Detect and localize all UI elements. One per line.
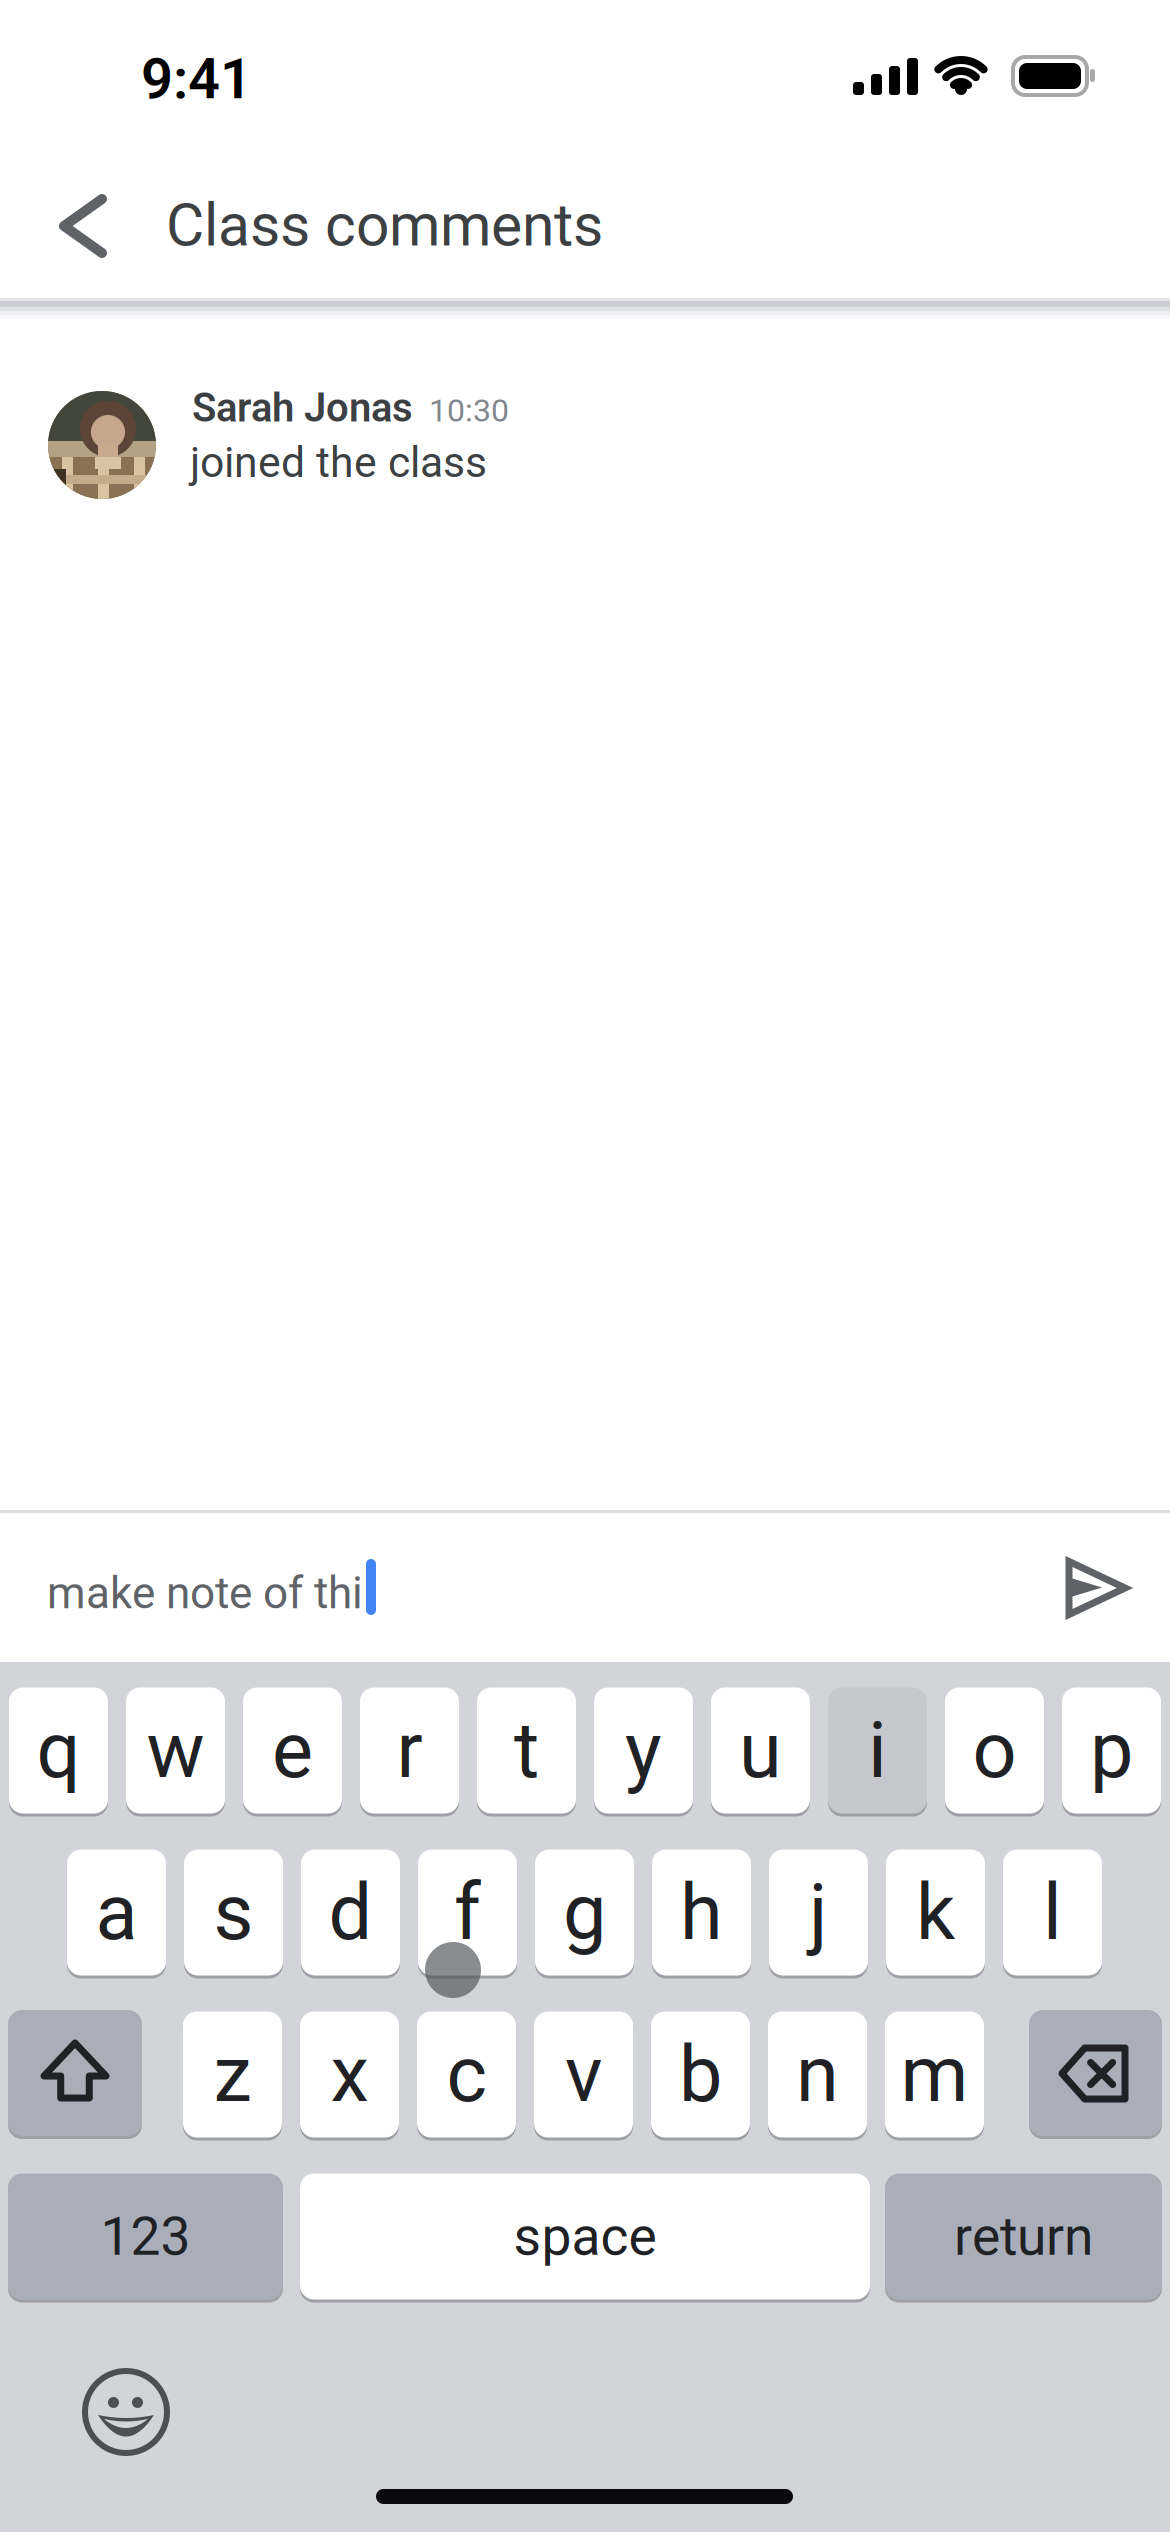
staticText: i xyxy=(868,1706,887,1795)
staticText: p xyxy=(1090,1706,1133,1795)
button[interactable]: k xyxy=(886,1848,985,1977)
staticText: x xyxy=(330,2030,368,2119)
staticText: 123 xyxy=(100,2206,190,2267)
button[interactable]: return xyxy=(885,2172,1162,2301)
staticText: t xyxy=(514,1706,539,1795)
staticText: joined the class xyxy=(190,438,487,487)
staticText: s xyxy=(213,1868,253,1957)
button[interactable]: g xyxy=(535,1848,634,1977)
button[interactable]: Send xyxy=(1058,1551,1136,1625)
staticText: b xyxy=(679,2030,722,2119)
button[interactable]: c xyxy=(417,2010,516,2139)
button[interactable]: x xyxy=(300,2010,399,2139)
staticText: Class comments xyxy=(166,192,603,259)
staticText: l xyxy=(1043,1868,1062,1957)
button[interactable]: m xyxy=(885,2010,984,2139)
button[interactable]: o xyxy=(945,1686,1044,1815)
staticText: z xyxy=(213,2030,251,2119)
staticText: n xyxy=(796,2030,839,2119)
staticText: e xyxy=(272,1706,313,1795)
staticText: f xyxy=(454,1868,481,1957)
button[interactable]: l xyxy=(1003,1848,1102,1977)
button[interactable]: p xyxy=(1062,1686,1161,1815)
staticText: q xyxy=(36,1706,80,1795)
button[interactable]: q xyxy=(9,1686,108,1815)
button[interactable]: t xyxy=(477,1686,576,1815)
button[interactable]: v xyxy=(534,2010,633,2139)
button[interactable]: Delete xyxy=(1029,2010,1162,2139)
button[interactable]: d xyxy=(301,1848,400,1977)
staticText: k xyxy=(916,1868,955,1957)
staticText: u xyxy=(739,1706,782,1795)
staticText: 10:30 xyxy=(429,392,509,429)
button[interactable]: Emoji xyxy=(77,2363,175,2461)
button[interactable]: z xyxy=(183,2010,282,2139)
staticText: make note of thi xyxy=(47,1568,363,1618)
button[interactable]: b xyxy=(651,2010,750,2139)
staticText: y xyxy=(625,1706,662,1795)
staticText: w xyxy=(146,1706,204,1795)
button[interactable]: e xyxy=(243,1686,342,1815)
button[interactable]: j xyxy=(769,1848,868,1977)
button[interactable]: y xyxy=(594,1686,693,1815)
staticText: d xyxy=(328,1868,372,1957)
button[interactable]: 123 xyxy=(8,2172,283,2301)
staticText: m xyxy=(900,2030,968,2119)
staticText: h xyxy=(680,1868,723,1957)
staticText: o xyxy=(972,1706,1016,1795)
staticText: j xyxy=(809,1868,828,1957)
staticText: Sarah Jonas xyxy=(192,385,413,431)
button[interactable]: Shift xyxy=(8,2010,142,2139)
button[interactable]: w xyxy=(126,1686,225,1815)
button[interactable]: h xyxy=(652,1848,751,1977)
staticText: g xyxy=(563,1868,606,1957)
staticText: a xyxy=(95,1868,137,1957)
staticText: return xyxy=(954,2206,1093,2267)
button[interactable]: i xyxy=(828,1686,927,1815)
button[interactable]: s xyxy=(184,1848,283,1977)
button[interactable]: n xyxy=(768,2010,867,2139)
button[interactable]: r xyxy=(360,1686,459,1815)
button[interactable]: space xyxy=(300,2172,870,2301)
staticText: v xyxy=(565,2030,602,2119)
button[interactable]: Back xyxy=(50,185,116,267)
staticText: space xyxy=(513,2206,656,2267)
button[interactable]: u xyxy=(711,1686,810,1815)
button[interactable]: f xyxy=(418,1848,517,1977)
button[interactable]: a xyxy=(67,1848,166,1977)
staticText: 9:41 xyxy=(141,47,252,111)
button[interactable]: Comment field xyxy=(0,1513,1040,1659)
staticText: c xyxy=(446,2030,486,2119)
staticText: r xyxy=(396,1706,422,1795)
